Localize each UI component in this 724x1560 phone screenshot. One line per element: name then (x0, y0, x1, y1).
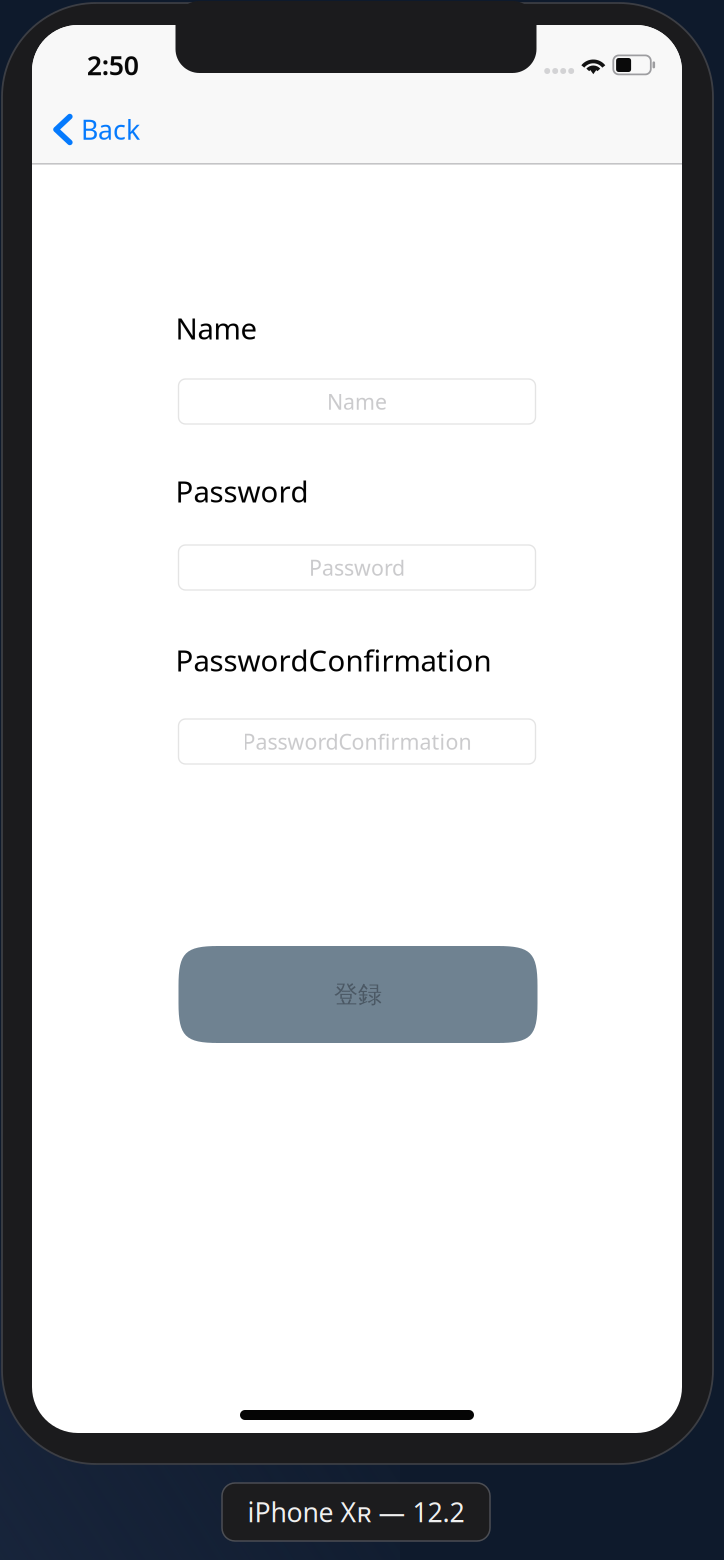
staticText: iPhone Xʀ — 12.2 (247, 1494, 464, 1530)
staticText: Back (81, 112, 140, 147)
staticText: PasswordConfirmation (175, 640, 491, 679)
button[interactable]: PasswordConfirmation (178, 719, 535, 764)
button[interactable]: Name (178, 379, 535, 424)
button[interactable]: Password (178, 545, 535, 590)
staticText: Name (327, 387, 387, 416)
staticText: Name (175, 308, 257, 347)
button[interactable]: 登録 (178, 946, 537, 1043)
button[interactable]: Back (52, 101, 202, 157)
staticText: Password (309, 553, 405, 582)
staticText: Password (175, 471, 308, 510)
staticText: PasswordConfirmation (242, 727, 471, 756)
staticText: 2:50 (87, 47, 139, 83)
staticText: 登録 (334, 980, 382, 1009)
